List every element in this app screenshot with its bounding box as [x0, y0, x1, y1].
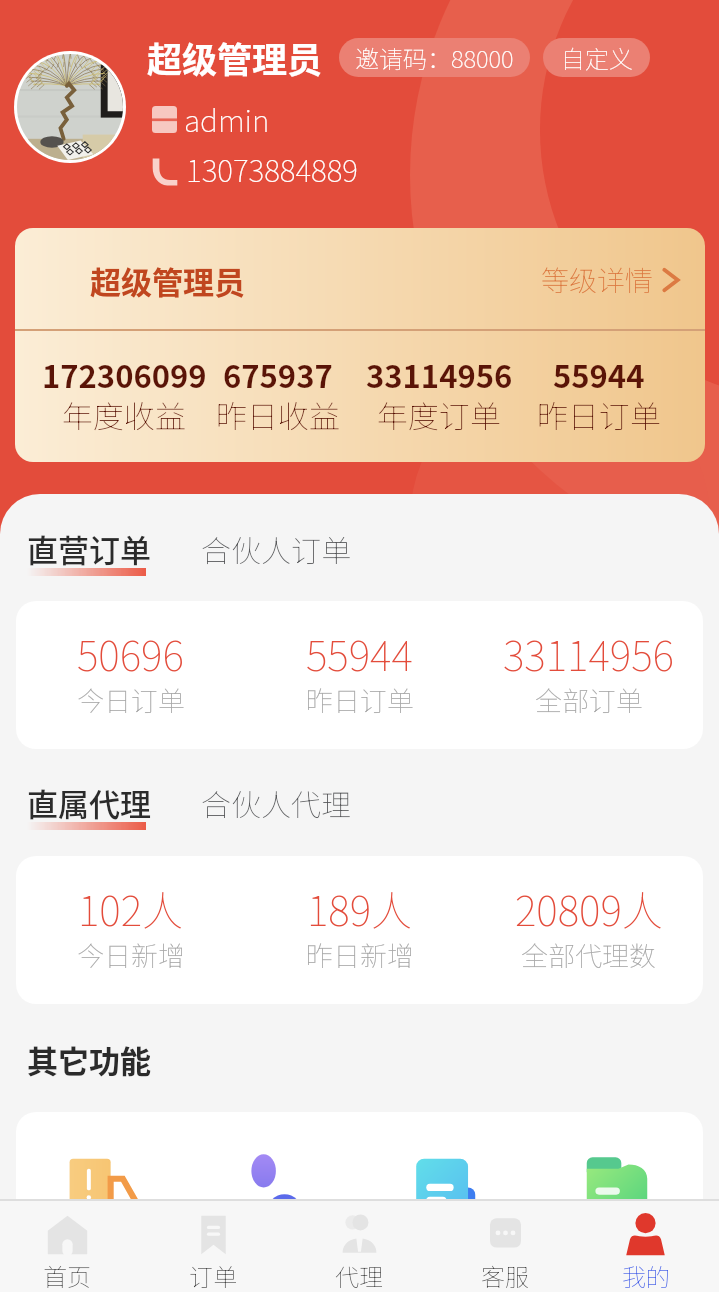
staticText: 年度订单 [377, 392, 501, 437]
button[interactable]: 33114956 [474, 601, 703, 749]
staticText: 客服 [481, 1258, 529, 1292]
staticText: 等级详情 [541, 259, 654, 300]
staticText: 邀请码：88000 [355, 40, 514, 75]
button[interactable]: 50696 [16, 601, 245, 749]
button[interactable]: 189人 [245, 856, 474, 1004]
staticText: 昨日订单 [306, 680, 414, 719]
button[interactable]: 55944 [245, 601, 474, 749]
staticText: 今日新增 [77, 935, 185, 974]
button[interactable]: Function 2 [237, 1150, 309, 1222]
button[interactable]: 首页 [0, 1201, 140, 1292]
staticText: 直属代理 [27, 780, 151, 825]
staticText: 合伙人代理 [201, 781, 351, 824]
staticText: 年度收益 [62, 392, 186, 437]
button[interactable]: 合伙人订单 [201, 527, 351, 570]
staticText: 55944 [553, 352, 645, 397]
staticText: 订单 [189, 1258, 237, 1292]
button[interactable]: 我的 [578, 1201, 713, 1292]
staticText: 其它功能 [27, 1037, 151, 1082]
button[interactable]: 订单 [140, 1201, 286, 1292]
button[interactable]: Avatar [17, 54, 123, 160]
staticText: 全部代理数 [521, 935, 656, 974]
staticText: admin [184, 97, 270, 140]
button[interactable]: 直营订单 [27, 526, 151, 579]
staticText: 675937 [223, 352, 333, 397]
staticText: 33114956 [503, 623, 674, 682]
staticText: 昨日收益 [216, 392, 340, 437]
staticText: 20809人 [515, 878, 663, 937]
button[interactable]: 等级详情 [541, 259, 683, 300]
staticText: 189人 [307, 878, 413, 937]
button[interactable]: 客服 [432, 1201, 578, 1292]
button[interactable]: 直属代理 [27, 780, 151, 833]
staticText: 首页 [43, 1258, 91, 1292]
button[interactable]: Function 1 [66, 1150, 138, 1222]
button[interactable]: Function 3 [409, 1150, 481, 1222]
staticText: 昨日新增 [306, 935, 414, 974]
button[interactable]: 102人 [16, 856, 245, 1004]
button[interactable]: Function 4 [581, 1150, 653, 1222]
staticText: 102人 [78, 878, 184, 937]
staticText: 172306099 [42, 352, 207, 397]
staticText: 13073884889 [186, 147, 358, 190]
staticText: 合伙人订单 [201, 527, 351, 570]
button[interactable]: 代理 [286, 1201, 432, 1292]
staticText: 33114956 [366, 352, 513, 397]
staticText: 全部订单 [535, 680, 643, 719]
staticText: 今日订单 [77, 680, 185, 719]
staticText: 自定义 [561, 40, 633, 75]
staticText: 55944 [306, 623, 413, 682]
staticText: 昨日订单 [537, 392, 661, 437]
button[interactable]: 邀请码：88000 [339, 38, 530, 77]
staticText: 直营订单 [27, 526, 151, 571]
staticText: 我的 [622, 1258, 670, 1292]
staticText: 超级管理员 [147, 32, 323, 83]
button[interactable]: 合伙人代理 [201, 781, 351, 824]
staticText: 50696 [77, 623, 184, 682]
button[interactable]: 自定义 [543, 38, 650, 77]
staticText: 代理 [335, 1258, 383, 1292]
button[interactable]: 20809人 [474, 856, 703, 1004]
staticText: 超级管理员 [90, 258, 245, 303]
